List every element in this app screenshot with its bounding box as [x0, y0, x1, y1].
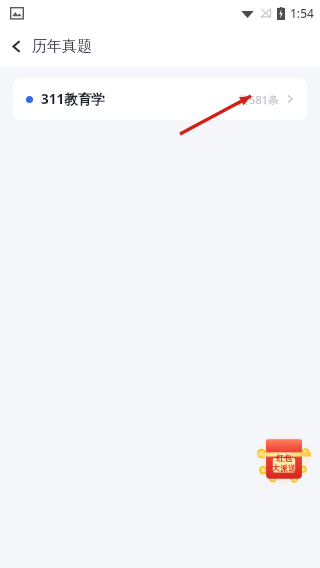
staticText: 红包	[276, 453, 292, 463]
staticText: 大派送	[272, 463, 296, 473]
button[interactable]: 311教育学	[13, 78, 307, 120]
staticText: 1:54	[290, 5, 314, 21]
staticText: 历年真题	[32, 37, 92, 56]
staticText: 共581条	[238, 92, 279, 107]
button[interactable]: 红包大派送	[256, 430, 312, 486]
staticText: 311教育学	[41, 90, 105, 108]
button[interactable]: Back	[0, 26, 32, 67]
